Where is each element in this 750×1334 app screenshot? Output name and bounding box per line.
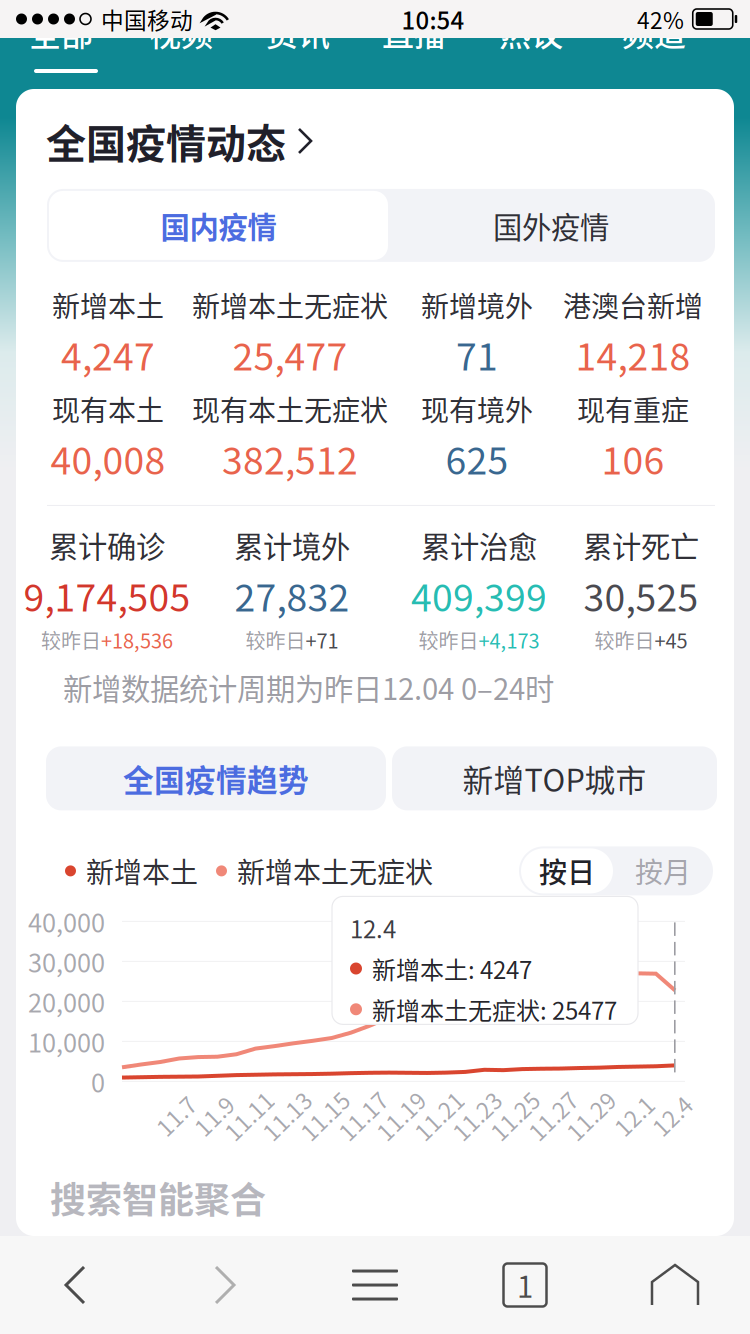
staticText: 12.4	[649, 1099, 694, 1132]
staticText: 累计治愈	[421, 524, 537, 566]
staticText: 新增本土无症状	[237, 851, 433, 891]
staticText: 资讯	[266, 9, 330, 55]
staticText: 频道	[622, 9, 686, 55]
staticText: +4,173	[478, 625, 539, 654]
staticText: 全国疫情趋势	[123, 756, 309, 801]
staticText: 热议	[499, 9, 563, 55]
staticText: 11.25	[486, 1099, 544, 1132]
staticText: 11.7	[153, 1099, 198, 1132]
staticText: +71	[305, 625, 338, 654]
staticText: +45	[654, 625, 687, 654]
staticText: 新增本土	[52, 285, 164, 325]
staticText: 国内疫情	[160, 204, 276, 247]
staticText: 9,174,505	[23, 568, 190, 622]
staticText: 11.19	[372, 1099, 430, 1132]
button[interactable]: 资讯	[240, 17, 356, 47]
staticText: 10,000	[28, 1023, 105, 1060]
staticText: 现有境外	[421, 389, 533, 429]
button[interactable]: 按月	[613, 846, 713, 895]
staticText: 直播	[382, 9, 446, 55]
button[interactable]: 热议	[472, 17, 590, 47]
staticText: 搜索智能聚合	[50, 1171, 266, 1223]
staticText: 11.27	[524, 1099, 582, 1132]
staticText: 较昨日	[41, 625, 101, 654]
staticText: 42%	[637, 3, 684, 35]
staticText: 14,218	[575, 327, 690, 381]
staticText: 11.23	[448, 1099, 506, 1132]
button[interactable]: 全部	[0, 17, 122, 47]
button[interactable]: Menu	[300, 1269, 450, 1300]
staticText: +18,536	[101, 625, 173, 654]
button[interactable]: 视频	[122, 17, 240, 47]
staticText: 现有本土	[52, 389, 164, 429]
staticText: 11.17	[334, 1099, 392, 1132]
button[interactable]: 国外疫情	[387, 189, 715, 262]
staticText: 较昨日	[594, 625, 654, 654]
staticText: 按月	[635, 851, 691, 891]
staticText: 新增数据统计周期为昨日12.04 0–24时	[63, 666, 554, 708]
staticText: 409,399	[411, 568, 547, 622]
button[interactable]: 国内疫情	[49, 191, 388, 260]
button[interactable]: 全国疫情趋势	[46, 746, 386, 810]
staticText: 11.29	[562, 1099, 620, 1132]
staticText: 11.15	[296, 1099, 354, 1132]
staticText: 新增本土无症状: 25477	[372, 992, 617, 1027]
staticText: 30,525	[583, 568, 698, 622]
staticText: 25,477	[232, 327, 347, 381]
staticText: 625	[445, 431, 508, 485]
staticText: 全国疫情动态	[46, 112, 286, 170]
staticText: 国外疫情	[493, 204, 609, 247]
staticText: 累计确诊	[49, 524, 165, 566]
staticText: 新增TOP城市	[462, 756, 646, 801]
staticText: 新增本土: 4247	[372, 951, 532, 986]
staticText: 1	[517, 1264, 533, 1306]
staticText: 全部	[29, 9, 93, 55]
staticText: 30,000	[28, 943, 105, 980]
staticText: 12.1	[611, 1099, 656, 1132]
staticText: 视频	[149, 9, 213, 55]
staticText: 中国移动	[101, 3, 193, 35]
button[interactable]: Tabs	[450, 1263, 600, 1306]
button[interactable]: 新增TOP城市	[392, 746, 717, 810]
staticText: 12.4	[350, 910, 396, 945]
staticText: 较昨日	[245, 625, 305, 654]
staticText: 现有本土无症状	[192, 389, 388, 429]
staticText: 新增境外	[421, 285, 533, 325]
staticText: 71	[456, 327, 498, 381]
staticText: 382,512	[222, 431, 358, 485]
staticText: 11.9	[191, 1099, 236, 1132]
staticText: 40,000	[28, 903, 105, 940]
button[interactable]: 全国疫情动态	[22, 89, 740, 189]
staticText: 4,247	[61, 327, 155, 381]
button[interactable]: Back	[0, 1264, 150, 1306]
staticText: 累计境外	[234, 524, 350, 566]
staticText: 27,832	[234, 568, 349, 622]
staticText: 10:54	[401, 2, 464, 36]
staticText: 新增本土	[86, 851, 198, 891]
button[interactable]: 直播	[356, 17, 472, 47]
button[interactable]: 频道	[590, 17, 718, 47]
staticText: 新增本土无症状	[192, 285, 388, 325]
staticText: 港澳台新增	[563, 285, 703, 325]
staticText: 11.11	[220, 1099, 278, 1132]
button[interactable]: 按日	[521, 848, 613, 893]
staticText: 106	[601, 431, 664, 485]
staticText: 较昨日	[418, 625, 478, 654]
staticText: 20,000	[28, 983, 105, 1020]
staticText: 按日	[539, 851, 595, 891]
staticText: 0	[91, 1063, 105, 1100]
staticText: 现有重症	[577, 389, 689, 429]
staticText: 11.21	[410, 1099, 468, 1132]
button[interactable]: Home	[600, 1263, 750, 1307]
staticText: 40,008	[50, 431, 165, 485]
button[interactable]: Forward	[150, 1264, 300, 1306]
staticText: 累计死亡	[583, 524, 699, 566]
staticText: 11.13	[258, 1099, 316, 1132]
